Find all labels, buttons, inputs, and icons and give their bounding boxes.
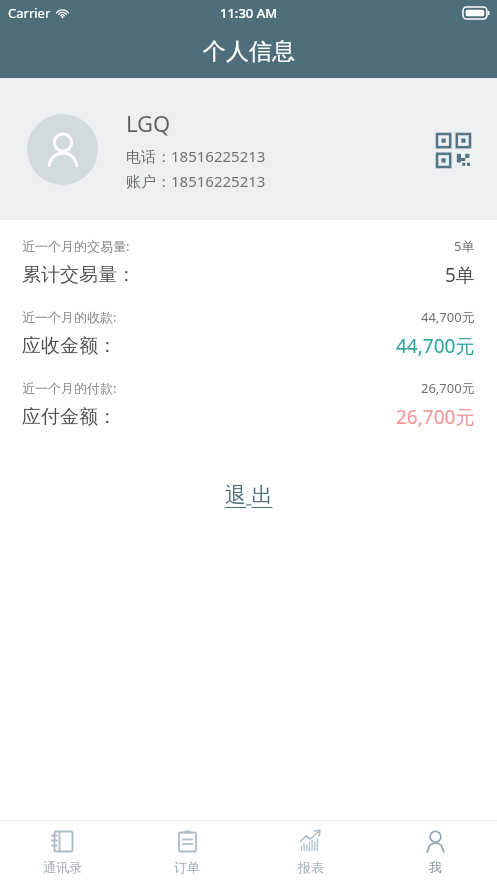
staticText: LGQ [126, 108, 171, 138]
staticText: 应收金额： [22, 334, 117, 358]
button[interactable]: 通讯录 [0, 821, 125, 883]
staticText: 44,700元 [421, 308, 475, 326]
button[interactable]: 我 [373, 821, 497, 883]
staticText: 26,700元 [396, 404, 475, 430]
staticText: 账户：18516225213 [126, 171, 266, 191]
staticText: 退 出 [225, 480, 273, 509]
staticText: 11:30 AM [220, 4, 278, 22]
staticText: 44,700元 [396, 333, 475, 359]
staticText: 5单 [454, 237, 475, 255]
staticText: 电话：18516225213 [126, 146, 266, 166]
staticText: 近一个月的收款: [22, 308, 117, 326]
button[interactable]: 二维码 [431, 128, 475, 172]
staticText: 累计交易量： [22, 263, 136, 287]
staticText: 近一个月的交易量: [22, 237, 130, 255]
staticText: 个人信息 [203, 37, 295, 66]
staticText: 26,700元 [421, 379, 475, 397]
staticText: Carrier [8, 4, 51, 22]
staticText: 近一个月的付款: [22, 379, 117, 397]
staticText: 订单 [174, 859, 200, 875]
staticText: 我 [429, 859, 442, 875]
staticText: 通讯录 [43, 859, 82, 875]
staticText: 5单 [445, 262, 475, 288]
staticText: 报表 [298, 859, 324, 875]
button[interactable]: 退 出 [211, 476, 287, 513]
button[interactable]: 订单 [125, 821, 249, 883]
staticText: 应付金额： [22, 405, 117, 429]
button[interactable]: 报表 [249, 821, 373, 883]
